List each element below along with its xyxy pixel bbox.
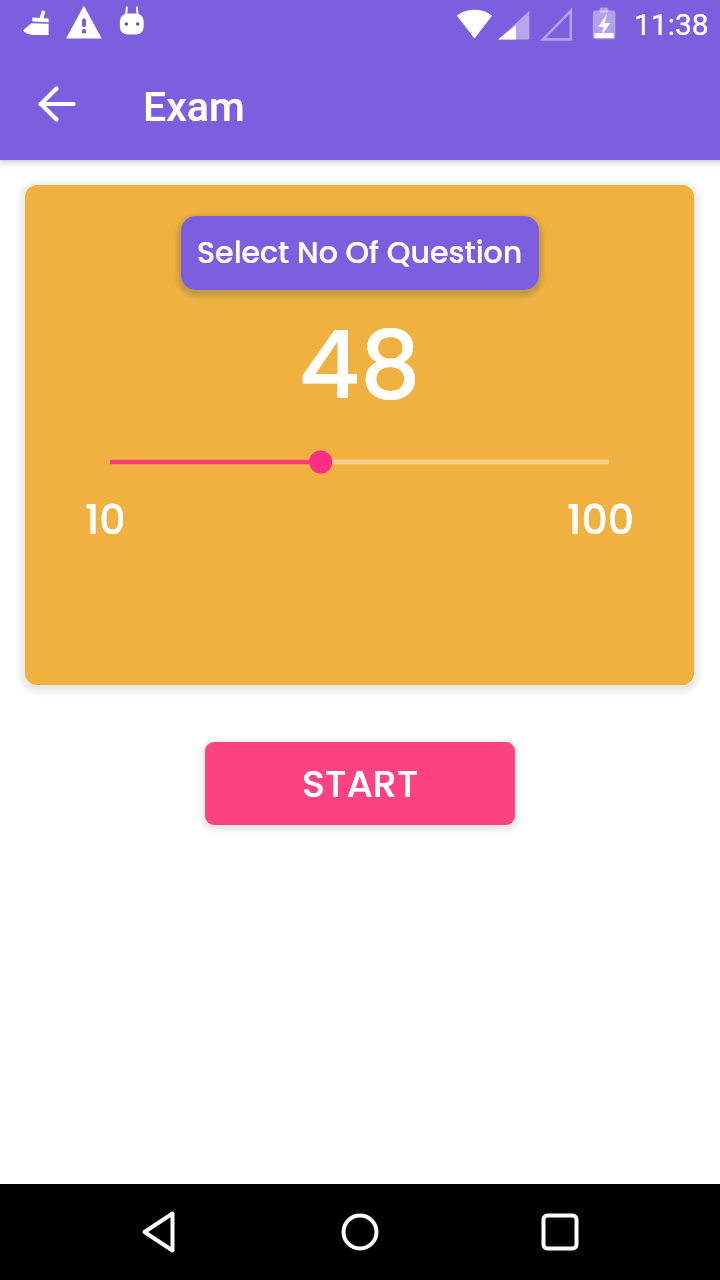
staticText: 10	[85, 491, 126, 548]
staticText: 11:38	[634, 7, 709, 42]
button[interactable]: START	[205, 742, 515, 825]
staticText: START	[302, 757, 419, 810]
staticText: 48	[298, 298, 421, 408]
button[interactable]: Number of questions slider	[25, 440, 694, 484]
button[interactable]: Back	[112, 1184, 208, 1280]
button[interactable]: Recent apps	[512, 1184, 608, 1280]
staticText: Exam	[143, 83, 245, 131]
button[interactable]: Select No Of Question	[181, 216, 539, 290]
button[interactable]: Navigate up	[24, 71, 89, 136]
button[interactable]: Home	[312, 1184, 408, 1280]
staticText: 100	[486, 491, 634, 548]
staticText: Select No Of Question	[197, 232, 523, 274]
